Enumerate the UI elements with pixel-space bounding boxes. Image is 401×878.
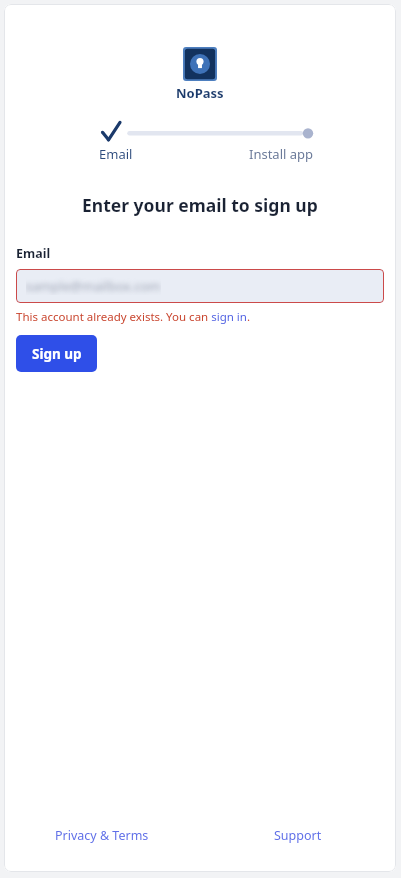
- button[interactable]: Install app: [249, 145, 314, 163]
- staticText: NoPass: [176, 84, 224, 102]
- button[interactable]: Email: [99, 145, 133, 163]
- staticText: Support: [274, 827, 322, 844]
- staticText: Sign up: [32, 345, 82, 363]
- staticText: sample@mailbox.com: [26, 277, 161, 295]
- staticText: Privacy & Terms: [55, 827, 149, 844]
- staticText: Email: [16, 245, 51, 262]
- staticText: Install app: [249, 145, 314, 163]
- staticText: Enter your email to sign up: [82, 193, 318, 217]
- other: NoPass logo: [183, 47, 217, 81]
- staticText: Email: [99, 145, 133, 163]
- button[interactable]: Sign up: [16, 335, 97, 372]
- button[interactable]: Privacy & Terms: [49, 823, 155, 848]
- button[interactable]: sample@mailbox.com: [16, 269, 384, 303]
- button[interactable]: Support: [268, 823, 328, 848]
- button[interactable]: This account already exists. You can sig…: [16, 309, 250, 325]
